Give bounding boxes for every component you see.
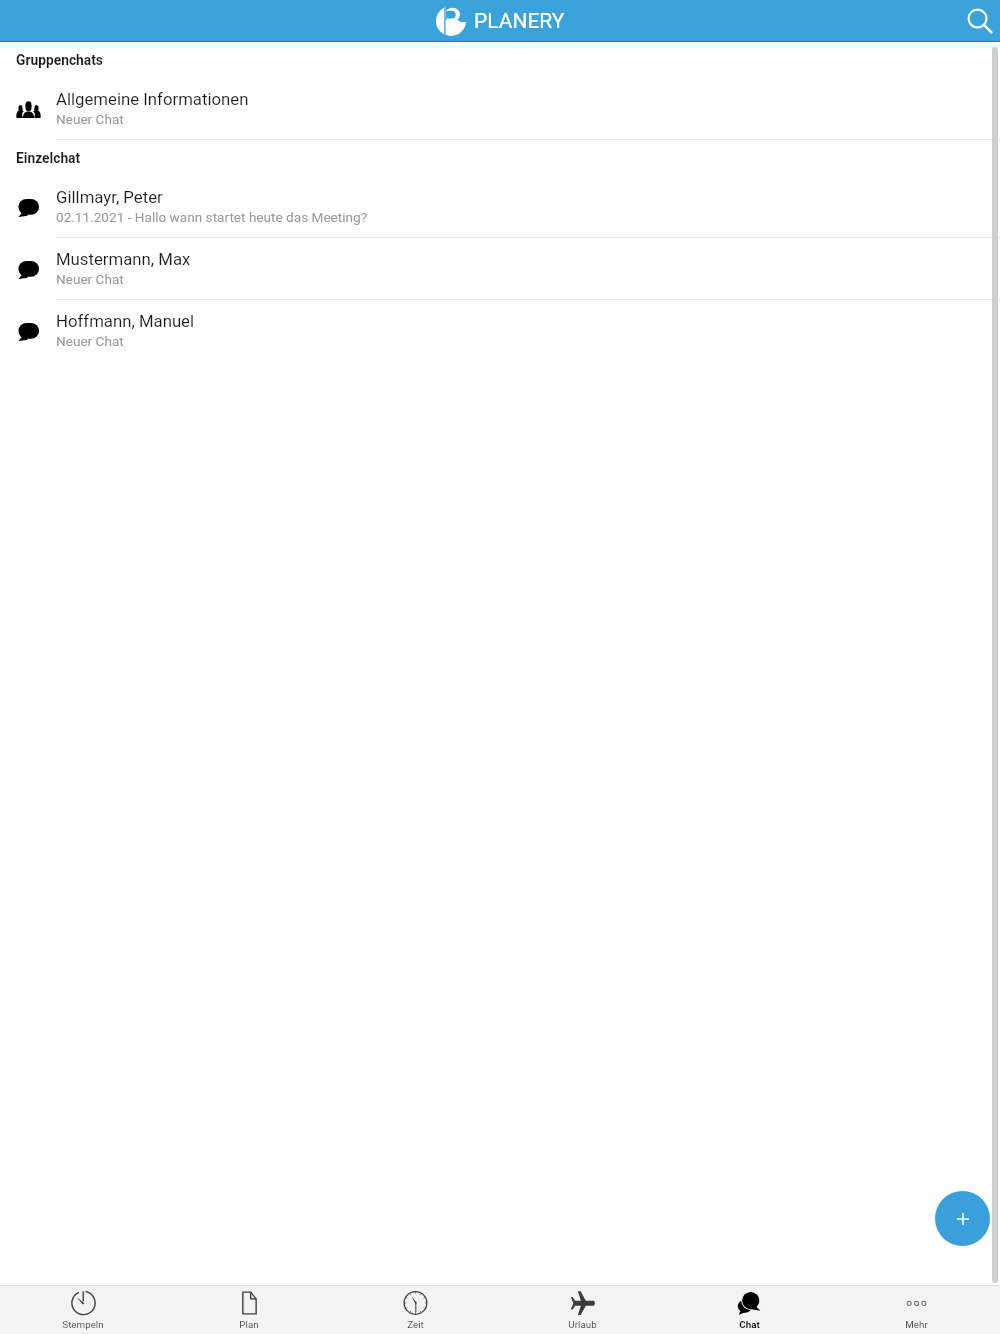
staticText: Chat: [739, 1319, 760, 1330]
button[interactable]: Mehr: [833, 1286, 1000, 1334]
staticText: 02.11.2021 - Hallo wann startet heute da…: [56, 209, 368, 225]
button[interactable]: Suche: [960, 1, 1000, 41]
staticText: Einzelchat: [16, 150, 81, 166]
staticText: Zeit: [407, 1319, 424, 1330]
button[interactable]: Hoffmann, Manuel: [0, 300, 1000, 361]
staticText: Stempeln: [62, 1319, 104, 1330]
staticText: Mustermann, Max: [56, 249, 191, 269]
staticText: PLANERY: [474, 9, 565, 34]
staticText: Neuer Chat: [56, 333, 124, 349]
button[interactable]: Neuer Chat: [935, 1191, 990, 1246]
button[interactable]: Zeit: [332, 1286, 499, 1334]
staticText: Allgemeine Informationen: [56, 89, 249, 109]
staticText: Neuer Chat: [56, 271, 124, 287]
staticText: Hoffmann, Manuel: [56, 311, 195, 331]
staticText: Urlaub: [568, 1319, 597, 1330]
staticText: Gillmayr, Peter: [56, 187, 163, 207]
staticText: Plan: [239, 1319, 259, 1330]
button[interactable]: Stempeln: [0, 1286, 166, 1334]
staticText: Mehr: [905, 1319, 928, 1330]
button[interactable]: Allgemeine Informationen: [0, 78, 1000, 139]
staticText: Neuer Chat: [56, 111, 124, 127]
button[interactable]: Urlaub: [499, 1286, 666, 1334]
staticText: Gruppenchats: [16, 52, 103, 68]
button[interactable]: Gillmayr, Peter: [0, 176, 1000, 237]
button[interactable]: Mustermann, Max: [0, 238, 1000, 299]
button[interactable]: Chat: [666, 1286, 833, 1334]
button[interactable]: Plan: [166, 1286, 332, 1334]
